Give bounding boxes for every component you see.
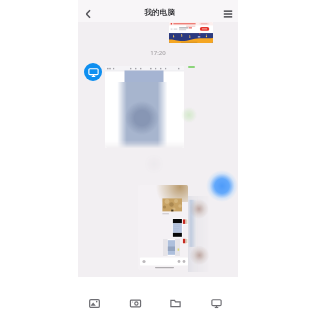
button[interactable]: My Computer bbox=[207, 294, 225, 312]
button[interactable]: Photos bbox=[85, 294, 103, 312]
button[interactable] bbox=[105, 66, 184, 148]
button[interactable]: Camera bbox=[126, 294, 144, 312]
button[interactable]: Files bbox=[166, 294, 184, 312]
staticText: 我的电脑 bbox=[144, 8, 175, 18]
button[interactable]: Back bbox=[80, 6, 96, 22]
button[interactable] bbox=[138, 185, 188, 270]
button[interactable]: Avatar bbox=[84, 63, 102, 81]
staticText: 17:20 bbox=[144, 49, 172, 57]
button[interactable]: Menu bbox=[220, 6, 236, 22]
button[interactable] bbox=[169, 22, 213, 43]
